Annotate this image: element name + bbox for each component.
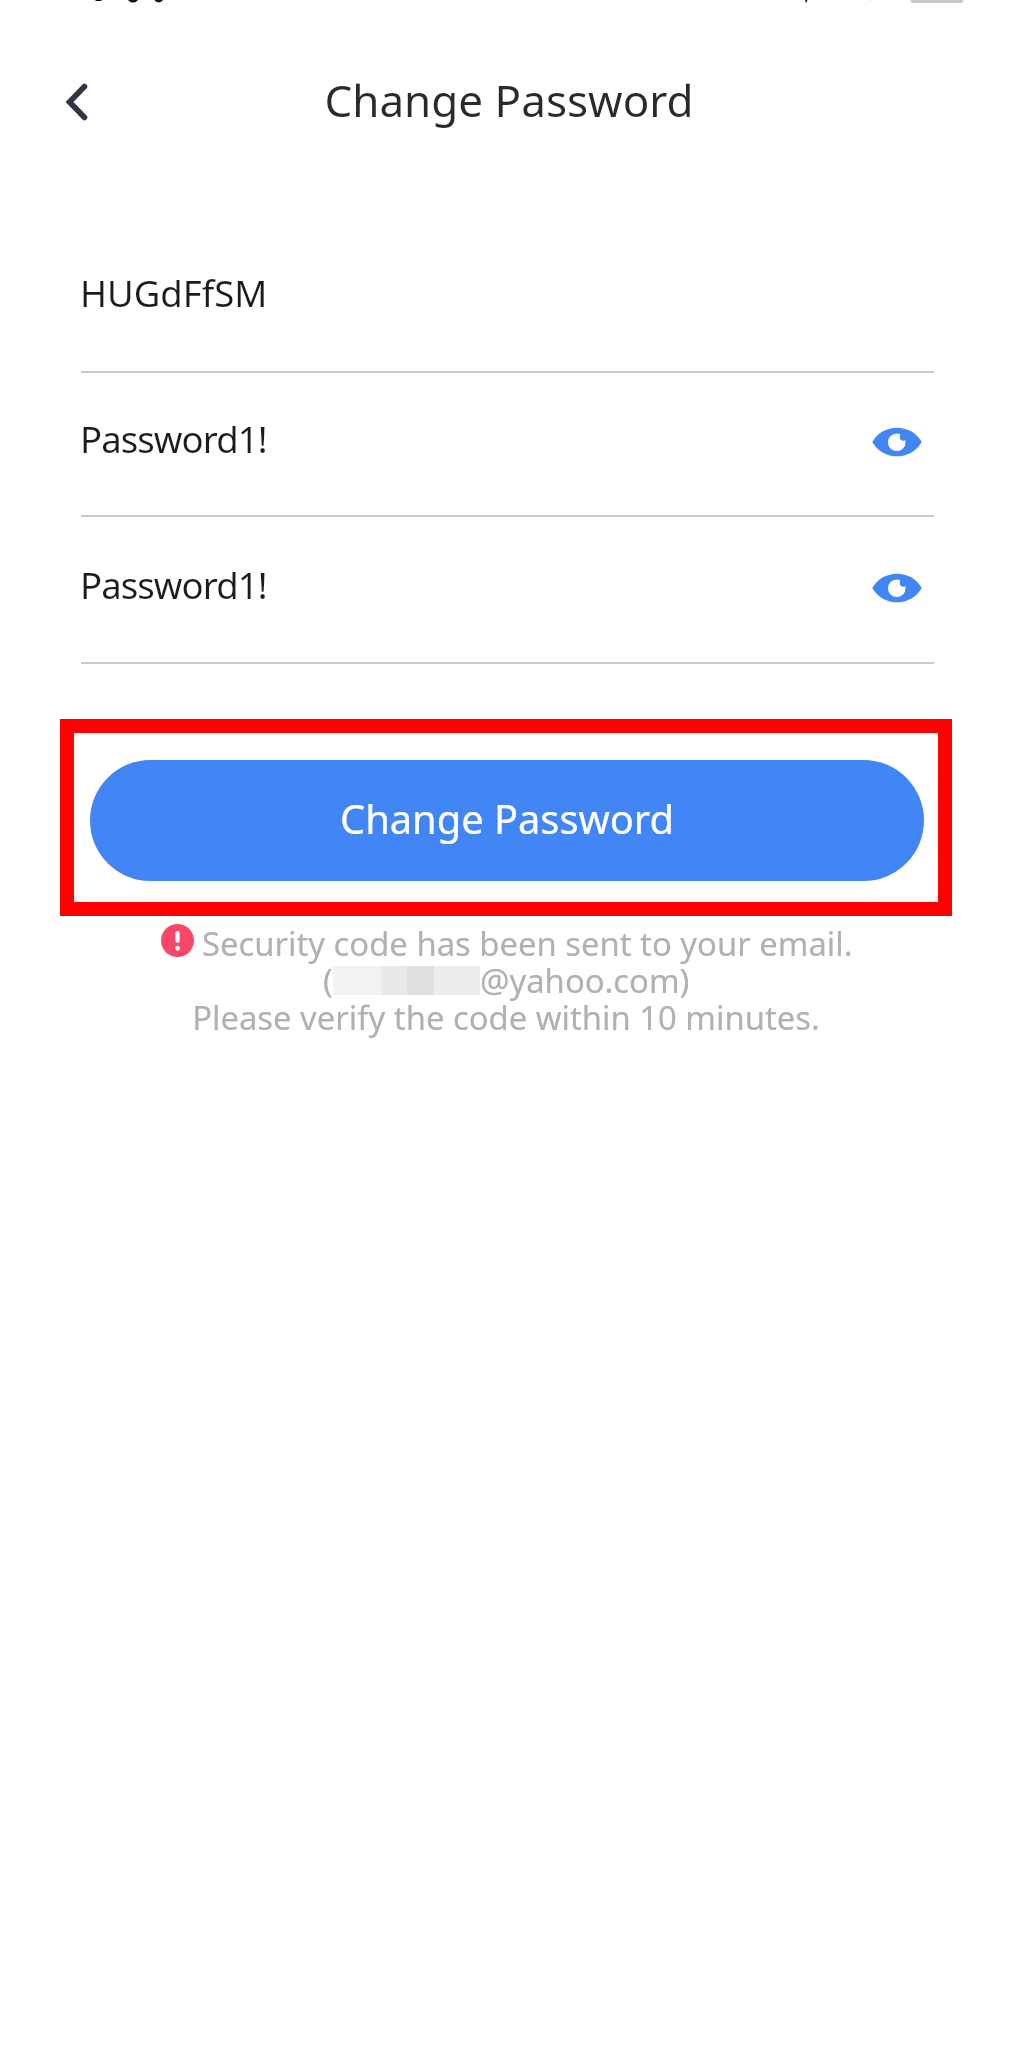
staticText: Please verify the code within 10 minutes… [0,995,1012,1040]
button[interactable]: Show password [865,410,929,474]
staticText: Security code has been sent to your emai… [202,921,853,966]
staticText: Password1! [80,414,267,464]
button[interactable]: Back [47,72,107,132]
staticText: Change Password [340,791,674,845]
staticText: HUGdFfSM [80,268,268,318]
button[interactable]: Change Password [90,760,924,881]
staticText: @yahoo.com) [480,958,690,1003]
staticText: Password1! [80,560,267,610]
staticText: ( [323,958,333,1003]
staticText: Change Password [3,70,1012,130]
button[interactable]: Show password [865,556,929,620]
